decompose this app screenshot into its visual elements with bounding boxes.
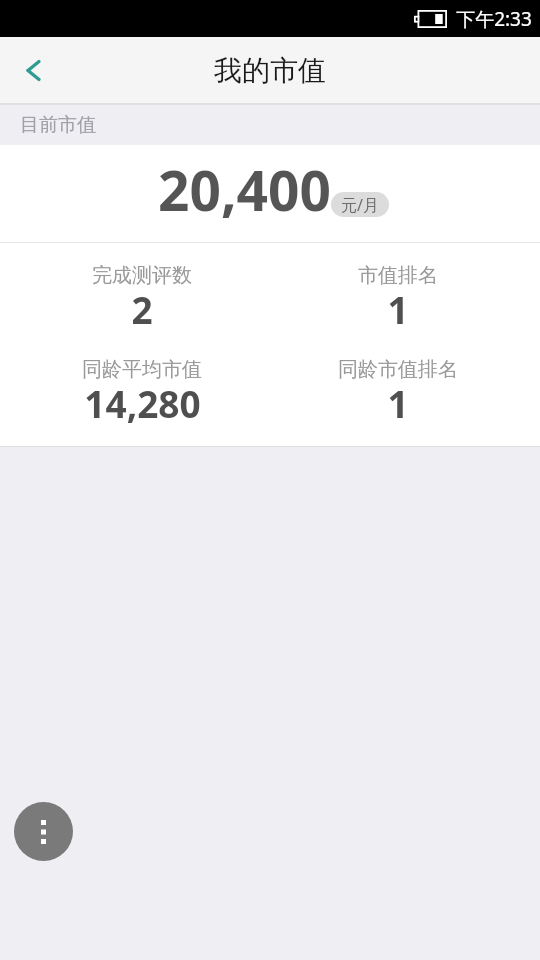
button[interactable]: Back bbox=[0, 37, 66, 103]
staticText: 同龄市值排名 bbox=[338, 357, 458, 382]
button[interactable]: 同龄平均市值 bbox=[14, 357, 270, 432]
button[interactable]: 完成测评数 bbox=[14, 263, 270, 338]
button[interactable]: 同龄市值排名 bbox=[270, 357, 526, 432]
staticText: 目前市值 bbox=[20, 113, 96, 137]
staticText: 14,280 bbox=[84, 378, 201, 428]
staticText: 20,400 bbox=[158, 152, 331, 227]
staticText: 元/月 bbox=[341, 194, 379, 216]
staticText: 市值排名 bbox=[358, 263, 438, 288]
staticText: 我的市值 bbox=[214, 53, 326, 88]
button[interactable]: More options bbox=[14, 802, 73, 861]
staticText: 下午2:33 bbox=[456, 6, 532, 32]
staticText: 1 bbox=[387, 284, 409, 334]
staticText: 同龄平均市值 bbox=[82, 357, 202, 382]
staticText: 2 bbox=[131, 284, 153, 334]
button[interactable]: 市值排名 bbox=[270, 263, 526, 338]
staticText: 1 bbox=[387, 378, 409, 428]
staticText: 完成测评数 bbox=[92, 263, 192, 288]
